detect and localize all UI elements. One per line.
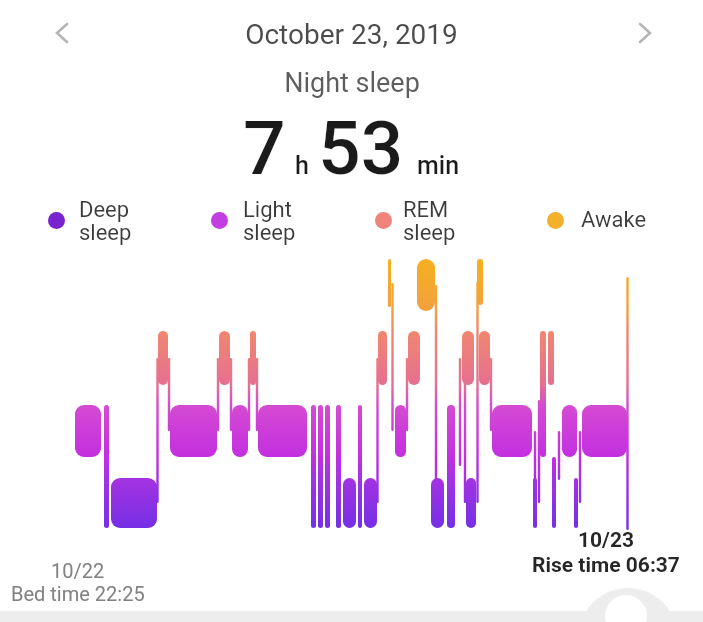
staticText: 10/23 (578, 528, 635, 553)
button[interactable] (623, 11, 667, 55)
staticText: Rise time 06:37 (532, 553, 680, 578)
staticText: h (295, 151, 309, 180)
staticText: Night sleep (284, 67, 420, 99)
staticText: REM sleep (403, 197, 456, 246)
staticText: October 23, 2019 (245, 18, 458, 51)
staticText: min (417, 151, 460, 180)
staticText: Deep sleep (79, 197, 132, 246)
staticText: Awake (581, 207, 647, 233)
staticText: Light sleep (243, 197, 296, 246)
staticText: Bed time 22:25 (11, 582, 145, 605)
staticText: 10/22 (51, 559, 105, 582)
button[interactable] (605, 595, 647, 622)
button[interactable] (40, 11, 84, 55)
staticText: 53 (318, 104, 404, 192)
staticText: 7 (243, 104, 286, 192)
